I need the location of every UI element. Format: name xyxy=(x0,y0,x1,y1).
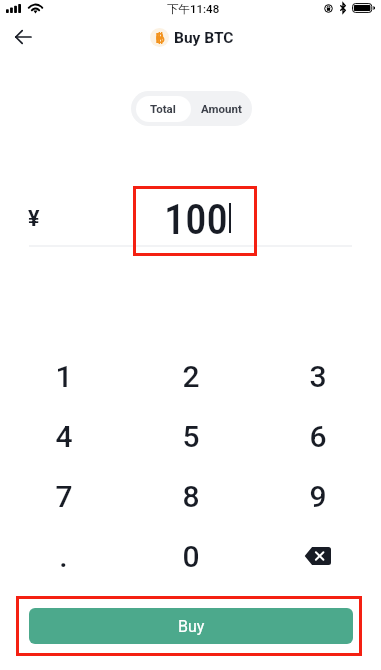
button[interactable]: 5 xyxy=(127,406,254,466)
staticText: 7 xyxy=(55,479,73,514)
button[interactable]: Back xyxy=(6,24,39,50)
button[interactable]: 8 xyxy=(127,466,254,526)
other: Backspace xyxy=(304,547,331,565)
button[interactable]: Backspace xyxy=(254,526,381,586)
staticText: . xyxy=(59,539,68,574)
staticText: 4 xyxy=(55,419,73,454)
button[interactable]: 2 xyxy=(127,346,254,406)
staticText: Amount xyxy=(201,102,242,115)
button[interactable]: Total xyxy=(136,96,191,122)
button[interactable]: 1 xyxy=(0,346,127,406)
button[interactable]: 3 xyxy=(254,346,381,406)
button[interactable]: 7 xyxy=(0,466,127,526)
staticText: ¥ xyxy=(28,206,40,231)
button[interactable]: Amount xyxy=(195,96,251,122)
staticText: 下午11:48 xyxy=(167,2,220,16)
button[interactable]: 0 xyxy=(127,526,254,586)
staticText: 2 xyxy=(182,359,200,394)
staticText: 0 xyxy=(182,539,200,574)
staticText: 3 xyxy=(309,359,327,394)
staticText: Total xyxy=(150,102,176,115)
staticText: Buy xyxy=(178,617,205,636)
staticText: 9 xyxy=(309,479,327,514)
button[interactable]: Buy xyxy=(29,608,353,644)
staticText: 1 xyxy=(55,359,73,394)
staticText: 5 xyxy=(182,419,200,454)
staticText: 8 xyxy=(182,479,200,514)
button[interactable]: 9 xyxy=(254,466,381,526)
staticText: 6 xyxy=(309,419,327,454)
staticText: 100 xyxy=(164,195,228,241)
staticText: Buy BTC xyxy=(174,29,234,47)
button[interactable]: 4 xyxy=(0,406,127,466)
button[interactable]: . xyxy=(0,526,127,586)
button[interactable]: 6 xyxy=(254,406,381,466)
